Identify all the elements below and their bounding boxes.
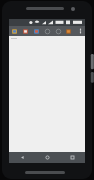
button[interactable]: Back xyxy=(9,152,35,163)
button[interactable]: More options xyxy=(78,26,83,36)
button[interactable]: Share xyxy=(33,28,40,35)
button[interactable]: Delete xyxy=(55,28,62,35)
button[interactable]: Open document xyxy=(11,28,18,35)
button[interactable]: Folder xyxy=(65,28,72,35)
button[interactable]: Help xyxy=(44,28,51,35)
button[interactable]: Lamp xyxy=(22,28,29,35)
button[interactable]: Home xyxy=(35,152,60,163)
button[interactable]: Recent apps xyxy=(60,152,85,163)
